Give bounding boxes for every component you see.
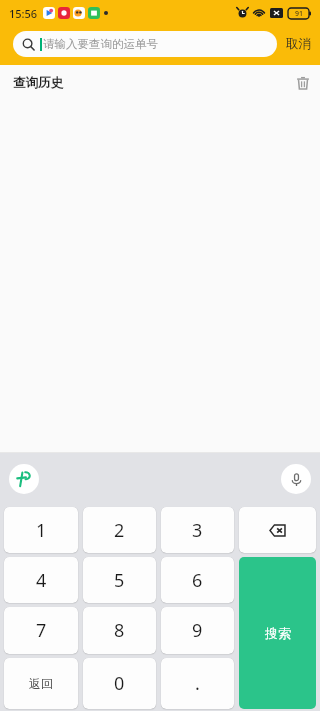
button[interactable]: 3	[161, 507, 234, 553]
staticText: 4	[36, 568, 47, 593]
staticText: .	[195, 671, 200, 696]
button[interactable]: 4	[4, 557, 78, 603]
button[interactable]: 0	[83, 658, 156, 709]
staticText: 8	[114, 618, 125, 643]
staticText: 3	[192, 518, 203, 543]
staticText: 搜索	[265, 625, 291, 641]
button[interactable]: 取消	[277, 36, 320, 52]
button[interactable]: 清除	[239, 507, 316, 553]
staticText: 6	[192, 568, 203, 593]
button[interactable]: 语音输入	[281, 464, 311, 494]
button[interactable]: 请输入要查询的运单号	[13, 31, 277, 57]
staticText: 返回	[29, 676, 53, 691]
staticText: 2	[114, 518, 125, 543]
staticText: 查询历史	[13, 75, 63, 91]
staticText: 取消	[286, 36, 311, 52]
staticText: 7	[36, 618, 47, 643]
staticText: 0	[114, 671, 125, 696]
button[interactable]: 返回	[4, 658, 78, 709]
staticText: 91	[295, 9, 304, 19]
button[interactable]: .	[161, 658, 234, 709]
button[interactable]: 7	[4, 607, 78, 654]
button[interactable]: 8	[83, 607, 156, 654]
staticText: 15:56	[9, 6, 38, 21]
button[interactable]: 搜索	[239, 557, 316, 709]
button[interactable]: 清空历史	[286, 66, 320, 100]
staticText: 5	[114, 568, 125, 593]
button[interactable]: 2	[83, 507, 156, 553]
button[interactable]: 1	[4, 507, 78, 553]
button[interactable]: 9	[161, 607, 234, 654]
staticText: 9	[192, 618, 203, 643]
button[interactable]: 5	[83, 557, 156, 603]
staticText: 1	[36, 518, 47, 543]
button[interactable]: 输入法设置	[9, 464, 39, 494]
staticText: 请输入要查询的运单号	[43, 37, 158, 51]
button[interactable]: 6	[161, 557, 234, 603]
